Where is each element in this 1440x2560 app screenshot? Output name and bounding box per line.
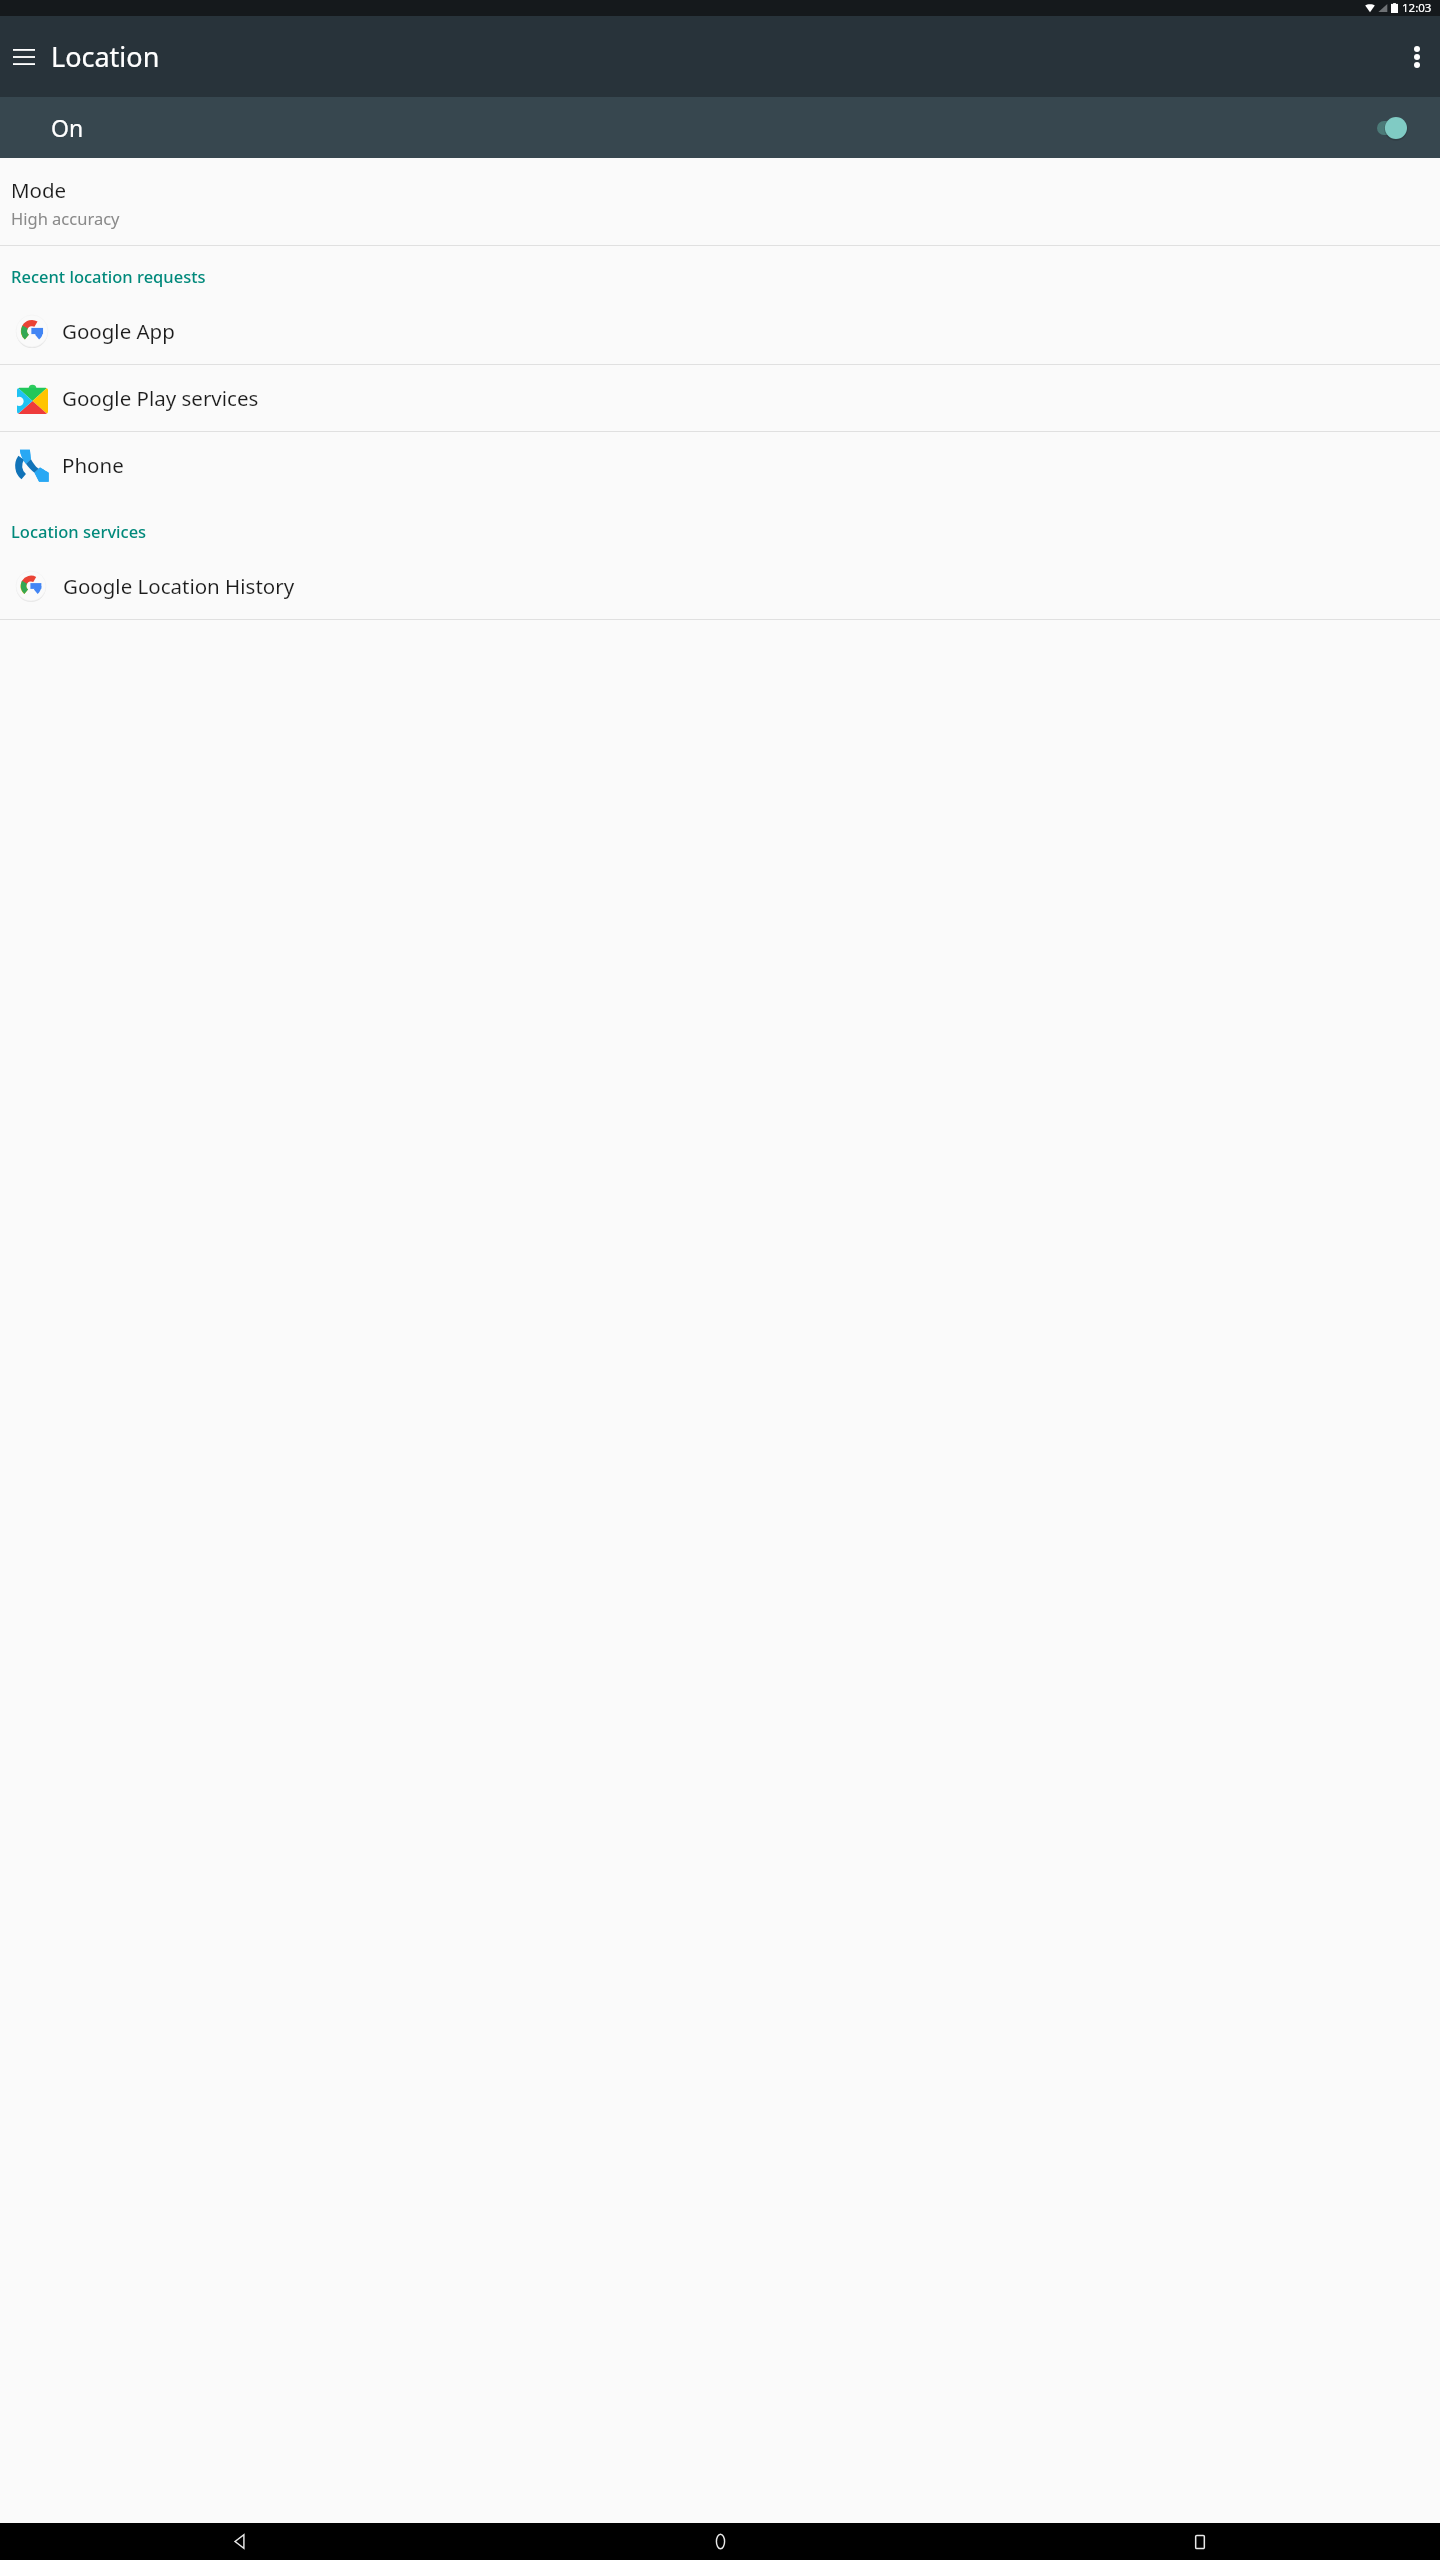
button[interactable]: Google App: [0, 298, 1440, 364]
staticText: High accuracy: [11, 207, 120, 229]
staticText: Location services: [11, 520, 147, 542]
button[interactable]: On: [0, 97, 1440, 158]
button[interactable]: Google Play services: [0, 365, 1440, 431]
staticText: On: [51, 112, 84, 143]
staticText: 12:03: [1402, 0, 1432, 16]
button[interactable]: Google Location History: [0, 553, 1440, 619]
button[interactable]: Mode: [0, 159, 1440, 245]
button[interactable]: Navigation menu: [7, 40, 41, 74]
staticText: Google Play services: [62, 384, 259, 412]
button[interactable]: Home: [480, 2523, 960, 2560]
staticText: Mode: [11, 176, 67, 204]
button[interactable]: More options: [1400, 40, 1434, 74]
staticText: Phone: [62, 451, 124, 479]
staticText: Google App: [62, 317, 175, 345]
button[interactable]: Recent apps: [960, 2523, 1440, 2560]
button[interactable]: Back: [0, 2523, 480, 2560]
staticText: Google Location History: [63, 572, 295, 600]
button[interactable]: Phone: [0, 432, 1440, 498]
staticText: Recent location requests: [11, 265, 206, 287]
staticText: Location: [51, 38, 160, 75]
